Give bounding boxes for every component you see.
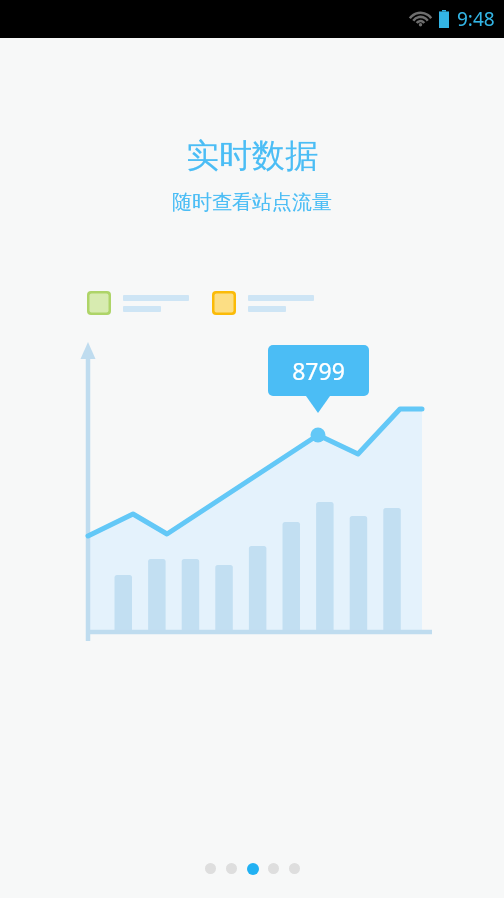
staticText: 9:48 xyxy=(457,6,495,32)
other: Wi-Fi signal xyxy=(410,11,431,27)
button[interactable] xyxy=(87,291,189,315)
other: Battery xyxy=(439,10,449,28)
staticText: 8799 xyxy=(268,355,369,386)
button[interactable]: Page 5 xyxy=(284,858,305,879)
staticText: 随时查看站点流量 xyxy=(0,190,504,215)
button[interactable] xyxy=(212,291,314,315)
staticText: 实时数据 xyxy=(0,135,504,177)
button[interactable]: Page 1 xyxy=(200,858,221,879)
button[interactable]: Page 3 xyxy=(242,858,263,879)
button[interactable]: Page 2 xyxy=(221,858,242,879)
button[interactable]: Page 4 xyxy=(263,858,284,879)
